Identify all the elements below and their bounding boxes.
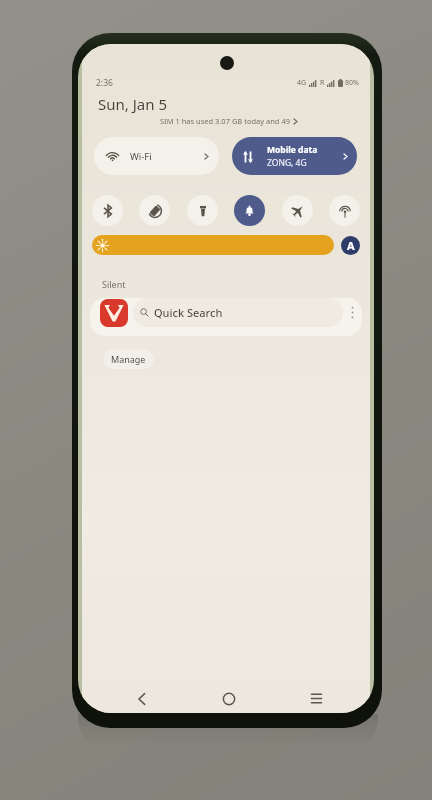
button[interactable]: Wi-Fi <box>94 137 219 175</box>
staticText: 80% <box>345 78 359 88</box>
staticText: Wi-Fi <box>130 150 152 163</box>
button[interactable]: Auto brightness <box>341 236 360 255</box>
button[interactable]: Manage <box>103 349 154 369</box>
button[interactable]: Flashlight <box>187 195 218 226</box>
button[interactable]: Mobile data <box>232 137 357 175</box>
staticText: ZONG, 4G <box>267 157 307 169</box>
staticText: R <box>320 78 325 88</box>
button[interactable]: Bluetooth <box>92 195 123 226</box>
staticText: SIM 1 has used 3.07 GB today and 49 <box>160 116 290 126</box>
button[interactable]: Airplane mode <box>282 195 313 226</box>
button[interactable] <box>92 235 334 255</box>
staticText: Silent <box>102 278 126 290</box>
staticText: 4G <box>297 78 307 88</box>
button[interactable]: Hotspot <box>329 195 360 226</box>
staticText: Quick Search <box>154 305 223 320</box>
button[interactable]: Home <box>213 684 245 713</box>
staticText: 2:36 <box>96 77 113 89</box>
staticText: A <box>347 238 355 253</box>
staticText: Mobile data <box>267 144 318 156</box>
button[interactable]: Recents <box>300 684 332 713</box>
staticText: Manage <box>111 353 146 365</box>
button[interactable]: Auto rotate <box>139 195 170 226</box>
staticText: Sun, Jan 5 <box>98 94 167 114</box>
button[interactable]: Back <box>126 684 158 713</box>
button[interactable]: Sound <box>234 195 265 226</box>
button[interactable]: Quick Search <box>90 298 362 336</box>
